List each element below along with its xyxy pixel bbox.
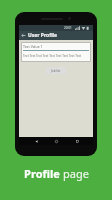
staticText: Profile xyxy=(24,166,60,181)
staticText: Job list xyxy=(51,69,61,73)
button[interactable]: Home xyxy=(52,137,60,145)
staticText: Text Text Text Text Text Text Text Text … xyxy=(23,54,82,58)
staticText: 20:01 xyxy=(64,26,72,30)
button[interactable]: Text Value 1 xyxy=(23,44,89,60)
staticText: Text Value 1 xyxy=(23,44,43,49)
button[interactable]: Back xyxy=(19,31,28,40)
staticText: page xyxy=(63,166,89,181)
button[interactable]: Back xyxy=(32,137,40,145)
button[interactable]: Recents xyxy=(73,137,81,145)
button[interactable]: Job list xyxy=(46,67,66,74)
staticText: User Profile xyxy=(28,32,58,39)
